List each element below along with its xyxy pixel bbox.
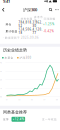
staticText: 沪深300 — [19, 56, 31, 59]
staticText: 同类基金推荐 — [3, 110, 27, 115]
staticText: 本基金 — [4, 56, 13, 59]
staticText: 2.0 — [0, 79, 2, 81]
button[interactable]: More — [54, 5, 60, 14]
staticText: 历史业绩走势 — [3, 48, 27, 53]
staticText: 持有份额 — [20, 17, 32, 20]
staticText: 4,120.77 — [32, 28, 42, 35]
button[interactable]: Search — [48, 5, 54, 14]
staticText: · 数据更新于 2025-09-06 — [3, 36, 39, 39]
staticText: 784,818.52 — [18, 21, 32, 28]
button[interactable]: Back — [0, 5, 7, 15]
staticText: +12.4% — [13, 117, 24, 121]
staticText: 累计收益 — [5, 30, 17, 33]
staticText: 3,862.30 — [32, 21, 42, 28]
staticText: 1.0 — [0, 87, 2, 89]
staticText: 沪深300 — [23, 7, 37, 12]
staticText: 3.0 — [0, 70, 2, 72]
staticText: 4.0 — [0, 62, 2, 64]
staticText: 蓝筹 — [3, 118, 9, 121]
staticText: +1.25% — [43, 22, 54, 26]
staticText: 9:41 — [3, 0, 10, 4]
staticText: 近一年收益 — [42, 118, 57, 121]
staticText: 日涨跌幅 — [43, 17, 55, 20]
staticText: 05 — [31, 99, 33, 101]
staticText: 03 — [18, 99, 20, 101]
staticText: 124,506.18 — [18, 28, 32, 35]
staticText: 参考市值 — [34, 15, 43, 22]
staticText: 07 — [43, 99, 45, 101]
staticText: 0.0 — [0, 96, 2, 98]
staticText: 01 — [6, 99, 8, 101]
staticText: 持仓 — [5, 23, 11, 26]
staticText: 09 — [56, 99, 58, 101]
button[interactable]: 蓝筹 — [0, 116, 60, 123]
staticText: -0.42% — [43, 29, 53, 33]
